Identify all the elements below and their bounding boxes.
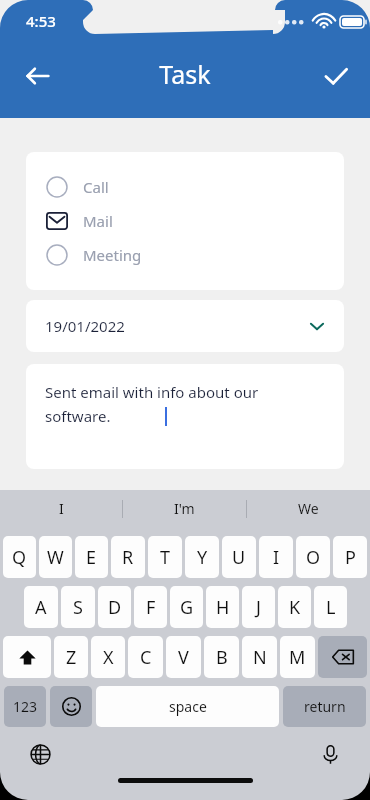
button[interactable]: L <box>314 586 347 628</box>
staticText: G <box>180 595 194 620</box>
staticText: Q <box>12 545 27 570</box>
button[interactable]: Y <box>185 536 219 578</box>
staticText: O <box>306 545 321 570</box>
staticText: J <box>256 595 261 620</box>
button[interactable]: X <box>91 636 125 678</box>
button[interactable]: I <box>0 490 122 527</box>
staticText: 19/01/2022 <box>45 316 125 336</box>
button[interactable]: N <box>242 636 277 678</box>
staticText: N <box>253 645 267 670</box>
button[interactable]: Back <box>14 52 62 100</box>
staticText: U <box>232 545 246 570</box>
button[interactable]: Change keyboard <box>23 737 57 771</box>
staticText: Z <box>66 645 77 670</box>
button[interactable]: C <box>128 636 163 678</box>
button[interactable]: Save <box>312 52 360 100</box>
staticText: S <box>73 595 83 620</box>
staticText: K <box>289 595 301 620</box>
button[interactable]: F <box>134 586 167 628</box>
staticText: I <box>59 499 64 518</box>
button[interactable]: Emoji <box>50 686 92 727</box>
staticText: L <box>326 595 336 620</box>
button[interactable]: W <box>39 536 72 578</box>
button[interactable]: M <box>280 636 315 678</box>
button[interactable]: space <box>96 686 279 727</box>
button[interactable]: E <box>75 536 108 578</box>
staticText: Mail <box>83 211 113 231</box>
button[interactable]: 123 <box>4 686 46 727</box>
staticText: 123 <box>13 697 38 716</box>
staticText: W <box>47 545 64 570</box>
button[interactable]: S <box>61 586 95 628</box>
button[interactable]: Q <box>3 536 36 578</box>
button[interactable]: I'm <box>123 490 246 527</box>
staticText: P <box>345 545 356 570</box>
button[interactable]: We <box>247 490 370 527</box>
button[interactable]: return <box>283 686 366 727</box>
button[interactable]: P <box>333 536 367 578</box>
staticText: I <box>273 545 280 570</box>
staticText: Sent email with info about our software. <box>45 382 259 426</box>
button[interactable]: Z <box>54 636 88 678</box>
button[interactable]: B <box>204 636 239 678</box>
button[interactable]: V <box>166 636 201 678</box>
button[interactable]: H <box>206 586 239 628</box>
staticText: T <box>160 545 171 570</box>
button[interactable]: K <box>278 586 311 628</box>
button[interactable]: Sent email with info about our software. <box>26 364 344 469</box>
button[interactable]: 19/01/2022 <box>26 300 344 352</box>
button[interactable]: T <box>148 536 182 578</box>
staticText: D <box>108 595 122 620</box>
button[interactable]: Call <box>26 170 344 204</box>
button[interactable]: I <box>259 536 293 578</box>
button[interactable]: Backspace <box>318 636 367 678</box>
staticText: I'm <box>174 499 195 518</box>
staticText: X <box>103 645 114 670</box>
staticText: space <box>169 697 207 716</box>
staticText: Meeting <box>83 245 142 265</box>
staticText: V <box>178 645 189 670</box>
button[interactable]: D <box>98 586 131 628</box>
button[interactable]: Voice input <box>313 737 347 771</box>
button[interactable]: U <box>222 536 256 578</box>
staticText: H <box>216 595 230 620</box>
staticText: Call <box>83 177 109 197</box>
staticText: 4:53 <box>26 11 56 31</box>
staticText: M <box>289 645 306 670</box>
button[interactable]: G <box>170 586 203 628</box>
staticText: F <box>146 595 156 620</box>
button[interactable]: Meeting <box>26 238 344 272</box>
staticText: We <box>298 499 319 518</box>
staticText: C <box>140 645 152 670</box>
staticText: B <box>216 645 228 670</box>
staticText: A <box>35 595 47 620</box>
button[interactable]: R <box>111 536 145 578</box>
button[interactable]: J <box>242 586 275 628</box>
button[interactable]: A <box>24 586 58 628</box>
staticText: R <box>122 545 134 570</box>
staticText: Task <box>159 57 211 91</box>
button[interactable]: Mail <box>26 204 344 238</box>
staticText: return <box>304 697 346 716</box>
button[interactable]: Shift <box>3 636 51 678</box>
button[interactable]: O <box>296 536 330 578</box>
staticText: E <box>86 545 97 570</box>
staticText: Y <box>197 545 208 570</box>
